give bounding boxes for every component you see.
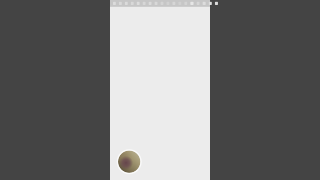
button[interactable]: Toolbar item 17 [209, 2, 212, 5]
button[interactable]: Toolbar item 3 [125, 2, 128, 5]
button[interactable]: Toolbar item 14 [190, 2, 194, 5]
button[interactable]: Toolbar item 6 [143, 2, 146, 5]
button[interactable]: Toolbar item 7 [149, 2, 151, 5]
button[interactable]: Toolbar item 16 [203, 2, 206, 5]
button[interactable]: Toolbar item 11 [172, 2, 175, 5]
button[interactable]: Toolbar item 5 [137, 2, 140, 5]
button[interactable]: Toolbar item 18 [215, 2, 218, 5]
button[interactable]: Toolbar item 15 [197, 2, 199, 5]
button[interactable]: Toolbar item 4 [131, 2, 134, 5]
button[interactable]: Profile photo [117, 149, 142, 174]
